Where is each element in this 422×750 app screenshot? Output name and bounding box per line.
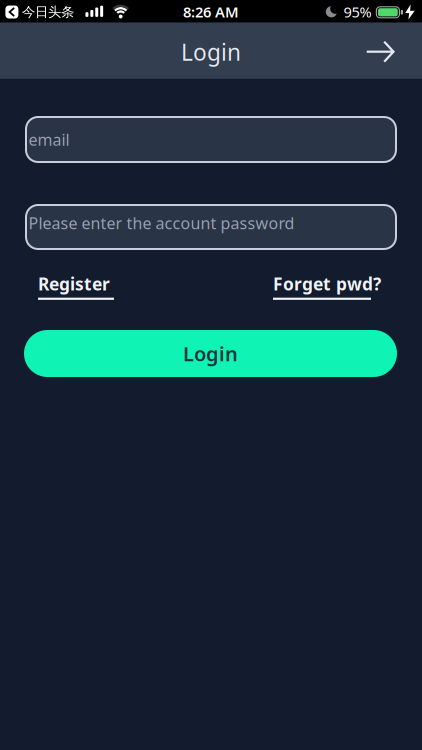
textField[interactable]: Please enter the account password bbox=[28, 212, 397, 234]
button[interactable]: Login bbox=[24, 330, 397, 377]
staticText: 95% bbox=[343, 2, 371, 21]
button[interactable]: Back to 今日头条 bbox=[5, 4, 74, 20]
staticText: 8:26 AM bbox=[183, 2, 239, 21]
button[interactable]: Register bbox=[38, 272, 114, 300]
staticText: email bbox=[28, 129, 69, 150]
staticText: Please enter the account password bbox=[28, 212, 294, 234]
button[interactable]: Forget pwd? bbox=[273, 272, 381, 300]
textField[interactable]: email bbox=[28, 129, 397, 150]
staticText: Login bbox=[183, 340, 238, 367]
staticText: Login bbox=[181, 37, 241, 67]
button[interactable]: Next bbox=[357, 30, 405, 74]
staticText: Register bbox=[38, 272, 110, 295]
staticText: Forget pwd? bbox=[273, 272, 381, 295]
staticText: 今日头条 bbox=[22, 4, 74, 20]
